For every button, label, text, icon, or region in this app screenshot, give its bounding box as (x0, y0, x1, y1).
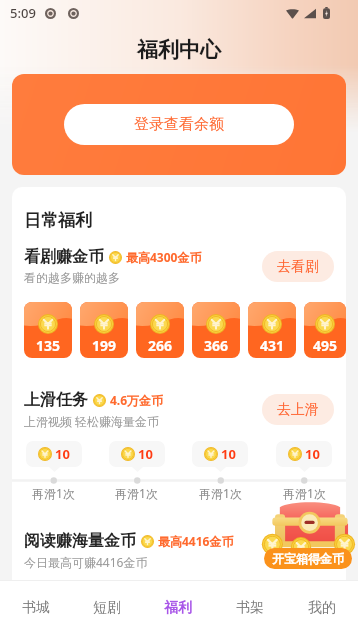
staticText: 4.6万金币 (110, 392, 164, 408)
staticText: 去上滑 (277, 401, 319, 419)
button[interactable]: 我的 (286, 580, 358, 636)
button[interactable]: 266 (136, 302, 184, 358)
staticText: 看剧赚金币 (24, 247, 104, 267)
staticText: 开宝箱得金币 (272, 551, 344, 566)
staticText: 495 (313, 336, 338, 355)
staticText: 登录查看余额 (134, 115, 224, 134)
staticText: 再滑1次 (115, 485, 158, 501)
staticText: 福利中心 (137, 37, 221, 63)
staticText: 再滑1次 (32, 485, 75, 501)
staticText: 最高4300金币 (126, 249, 202, 265)
button[interactable]: 去上滑 (262, 394, 334, 425)
staticText: 看的越多赚的越多 (24, 270, 120, 285)
staticText: 366 (204, 336, 229, 355)
button[interactable]: 短剧 (71, 580, 142, 636)
staticText: 5:09 (10, 4, 36, 22)
staticText: 书架 (236, 599, 264, 617)
staticText: 我的 (308, 599, 336, 617)
staticText: 上滑任务 (24, 390, 88, 410)
staticText: 福利 (164, 599, 192, 617)
staticText: 书城 (22, 599, 50, 617)
staticText: 去看剧 (277, 258, 319, 276)
button[interactable]: 书架 (214, 580, 286, 636)
staticText: 短剧 (93, 599, 121, 617)
button[interactable]: 366 (192, 302, 240, 358)
staticText: 199 (92, 336, 117, 355)
button[interactable]: 开宝箱得金币 (264, 503, 352, 569)
staticText: 再滑1次 (283, 485, 326, 501)
staticText: 上滑视频 轻松赚海量金币 (24, 413, 160, 429)
staticText: 431 (260, 336, 285, 355)
staticText: 10 (138, 445, 153, 463)
staticText: 阅读赚海量金币 (24, 531, 136, 551)
button[interactable]: 书城 (0, 580, 71, 636)
button[interactable]: 登录查看余额 (64, 104, 294, 145)
staticText: 10 (221, 445, 236, 463)
staticText: 10 (305, 445, 320, 463)
staticText: 最高4416金币 (158, 533, 234, 549)
button[interactable]: 199 (80, 302, 128, 358)
staticText: 今日最高可赚4416金币 (24, 554, 148, 570)
staticText: 266 (148, 336, 173, 355)
button[interactable]: 135 (24, 302, 72, 358)
button[interactable]: 去看剧 (262, 251, 334, 282)
staticText: 日常福利 (24, 210, 92, 231)
staticText: 再滑1次 (199, 485, 242, 501)
button[interactable]: 495 (304, 302, 346, 358)
button[interactable]: 431 (248, 302, 296, 358)
button[interactable]: 福利 (142, 580, 214, 636)
staticText: 135 (36, 336, 61, 355)
staticText: 10 (55, 445, 70, 463)
